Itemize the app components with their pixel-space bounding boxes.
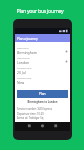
staticText: London [17,60,30,65]
staticText: Leaving time [17,76,32,79]
button[interactable]: Destination [17,55,68,65]
staticText: Birmingham [17,50,37,55]
button[interactable]: Plan [17,90,68,98]
staticText: Now [17,80,25,85]
button[interactable]: Leaving date [17,65,68,75]
staticText: Leaving date [17,66,32,69]
staticText: Plan your bus journey [0,7,82,14]
staticText: Arrive at: Trafalgar Sq [17,116,44,120]
button[interactable]: Departure [17,45,68,55]
staticText: Departure time: 10:20 [17,112,44,116]
staticText: Plan [39,92,46,96]
staticText: Service number: X20 Express [17,107,52,111]
button[interactable]: Clear [65,60,68,63]
staticText: Birmingham to London [17,100,68,104]
button[interactable]: Clear [65,50,68,53]
button[interactable]: Leaving time [17,75,68,85]
staticText: Destination [17,56,30,59]
staticText: Plan a journey [17,36,38,41]
staticText: 20 Jul [17,70,26,75]
staticText: Departure [17,46,29,49]
